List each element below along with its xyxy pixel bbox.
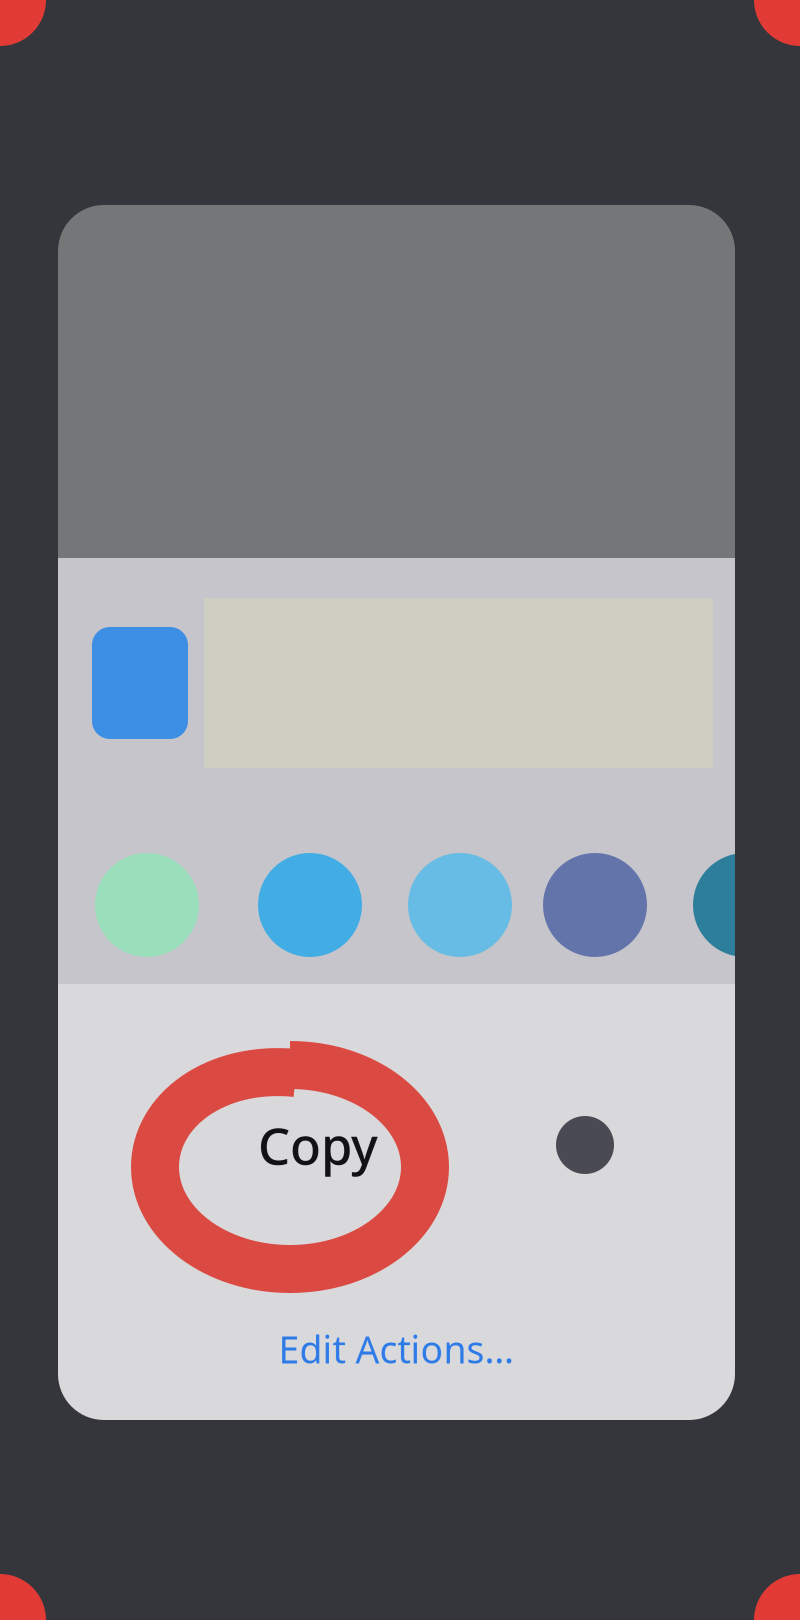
button[interactable]: More apps [693, 853, 797, 957]
staticText: Copy [258, 1111, 378, 1179]
button[interactable]: Messages [95, 853, 199, 957]
button[interactable]: Mail [258, 853, 362, 957]
button[interactable]: Slack [543, 853, 647, 957]
staticText: Edit Actions… [278, 1324, 514, 1374]
button[interactable]: Copy [58, 984, 735, 1306]
button[interactable]: Telegram [408, 853, 512, 957]
button[interactable]: Edit Actions… [278, 1314, 514, 1384]
button[interactable]: Shared item preview [58, 558, 735, 808]
